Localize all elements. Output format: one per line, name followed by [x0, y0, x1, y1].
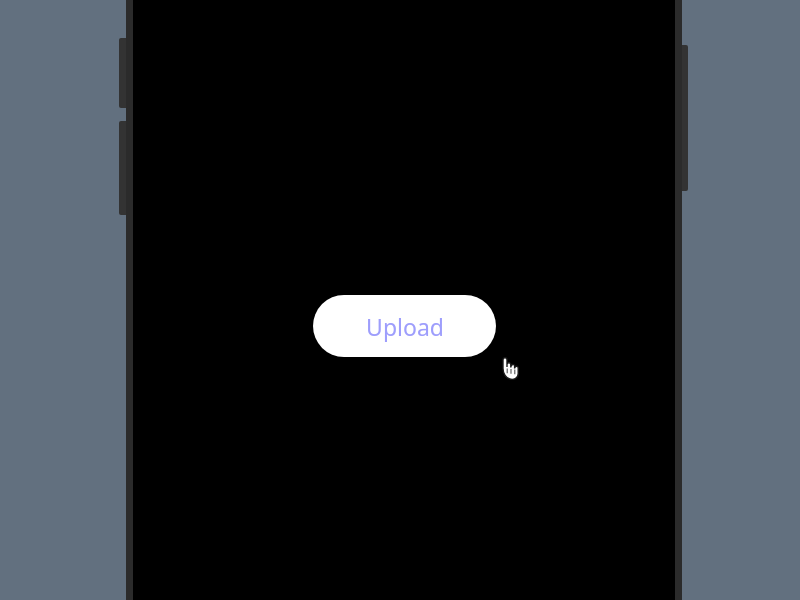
button[interactable]: Upload	[313, 295, 496, 357]
staticText: Upload	[366, 311, 444, 342]
